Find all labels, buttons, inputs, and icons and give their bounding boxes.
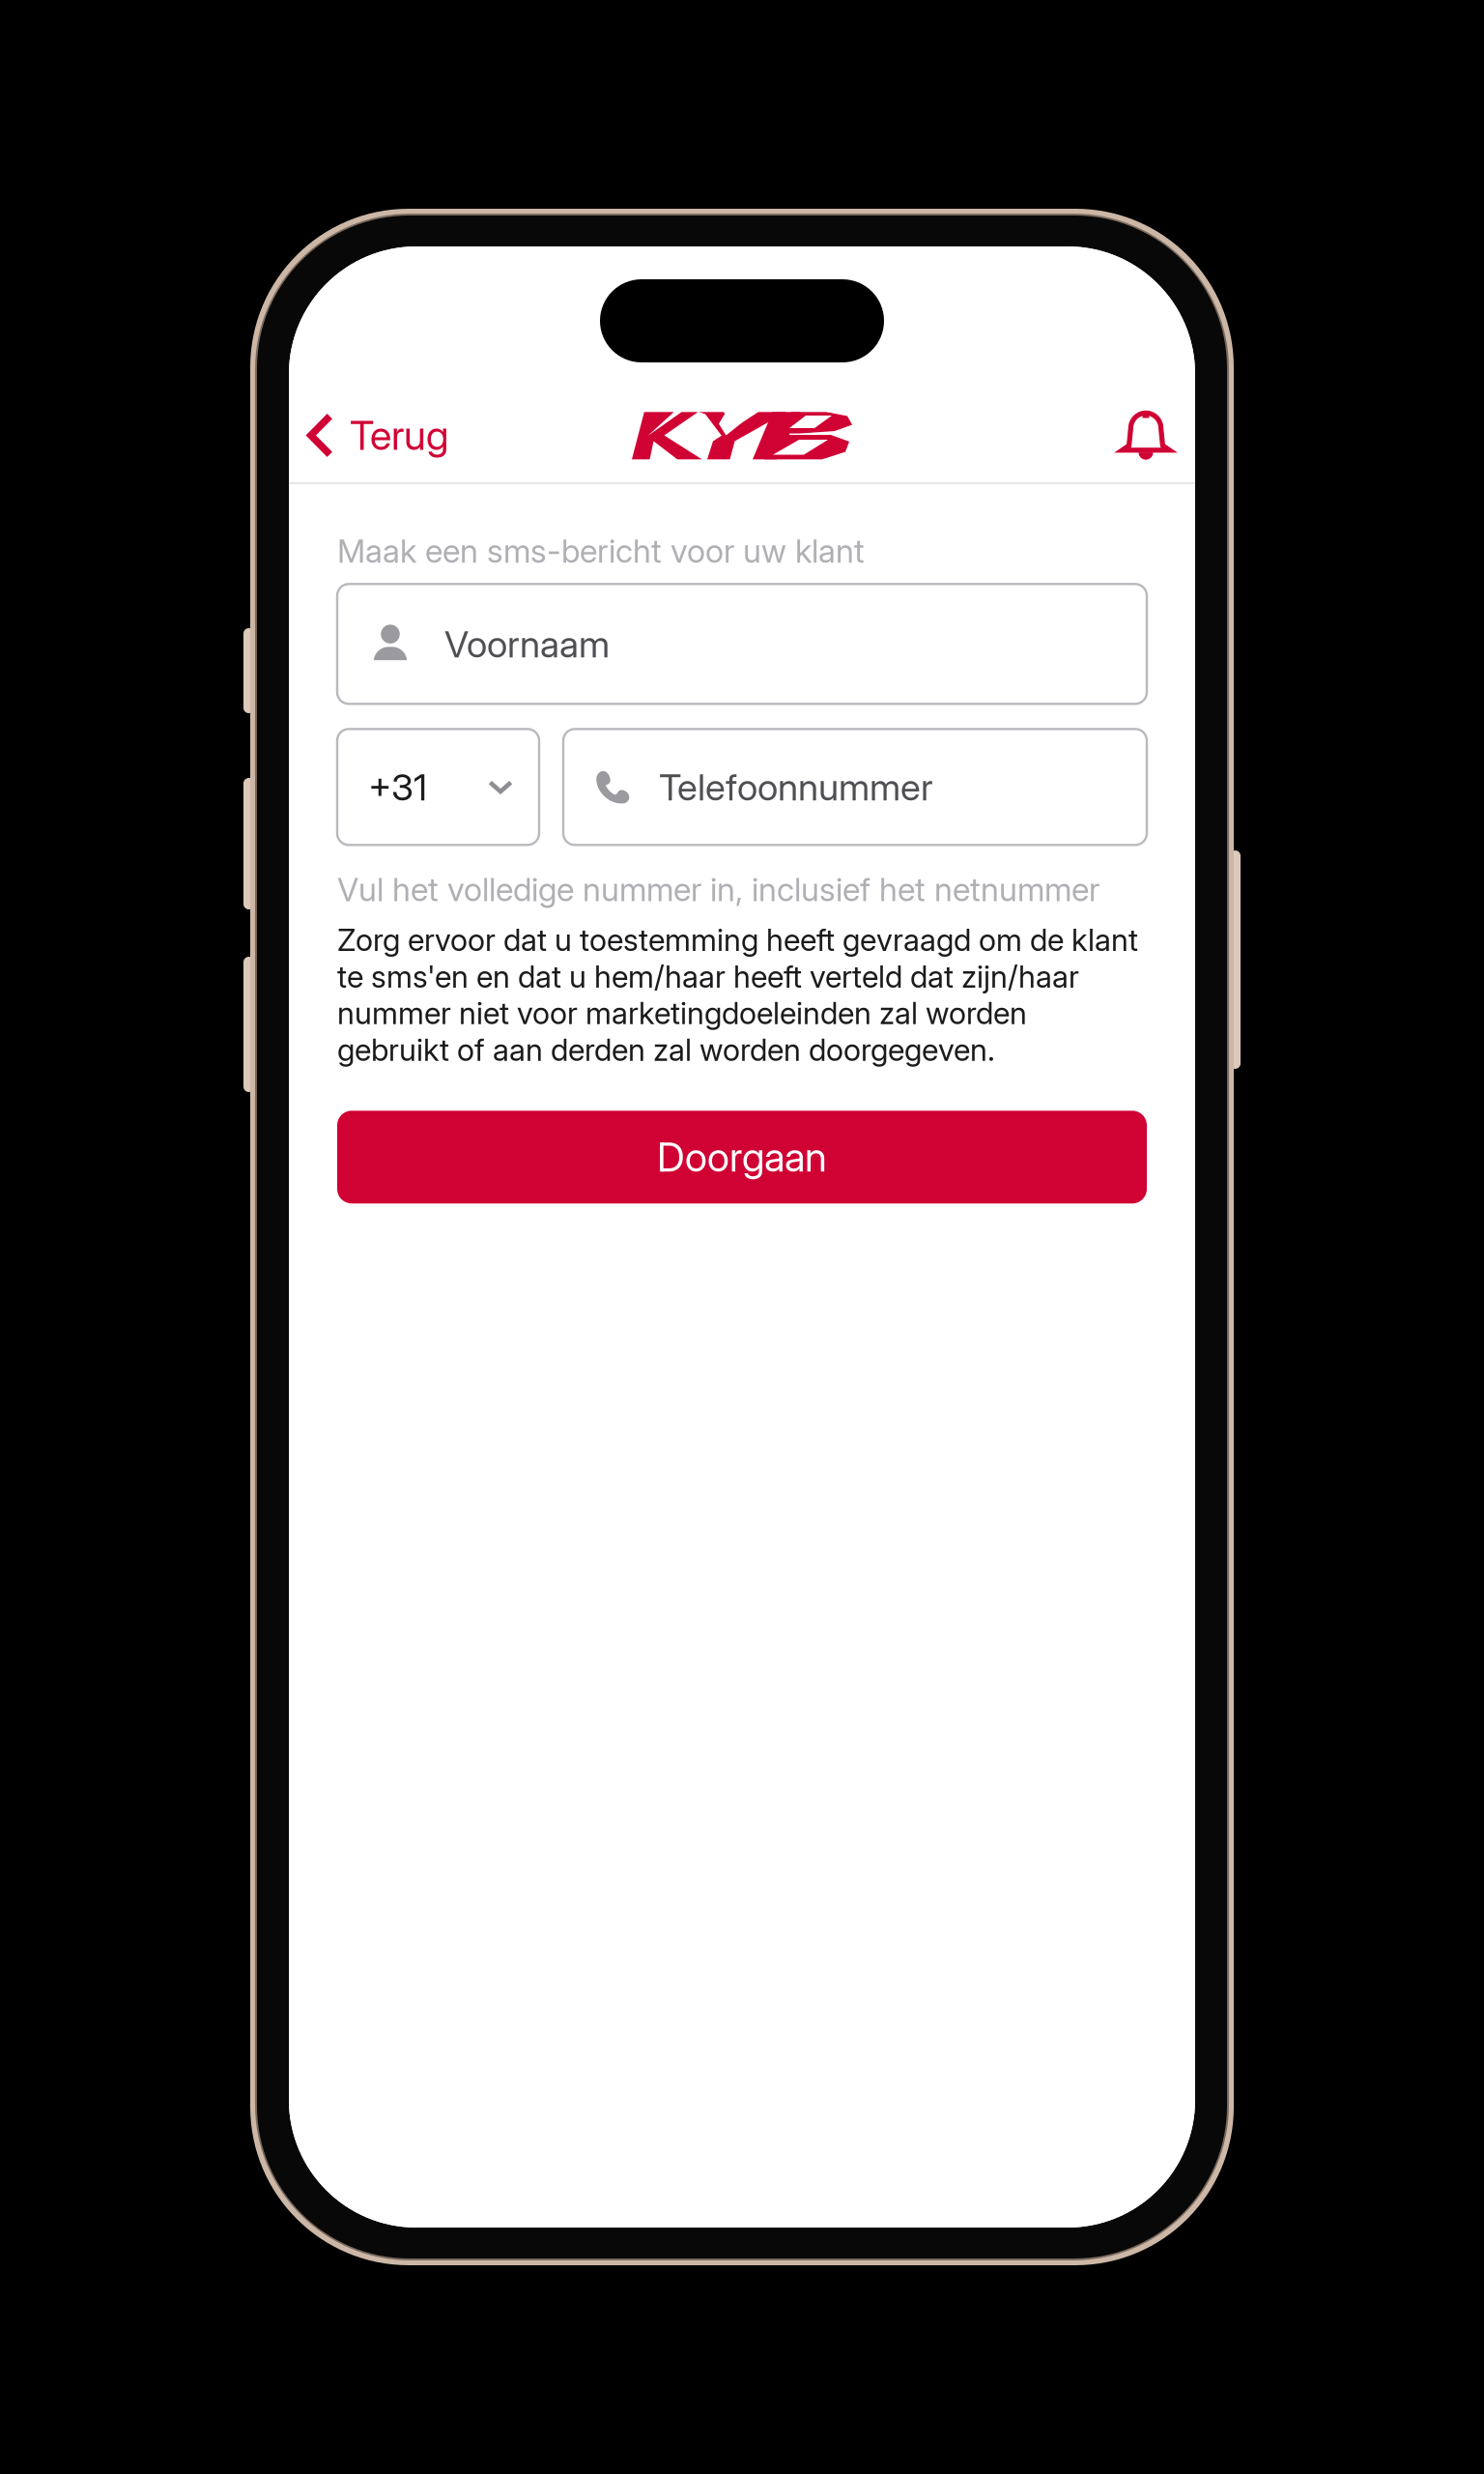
staticText: Maak een sms-bericht voor uw klant (337, 532, 865, 570)
staticText: Vul het volledige nummer in, inclusief h… (337, 870, 1099, 909)
button[interactable]: Doorgaan (337, 1111, 1147, 1203)
button[interactable]: +31 (337, 729, 539, 845)
staticText: Zorg ervoor dat u toestemming heeft gevr… (337, 922, 1138, 1068)
button[interactable]: Terug (289, 402, 448, 469)
staticText: Telefoonnummer (659, 765, 933, 809)
button[interactable]: Notifications (1121, 399, 1195, 472)
staticText: Doorgaan (657, 1133, 827, 1181)
staticText: +31 (368, 765, 427, 809)
staticText: Terug (350, 411, 448, 460)
staticText: Voornaam (444, 622, 610, 666)
